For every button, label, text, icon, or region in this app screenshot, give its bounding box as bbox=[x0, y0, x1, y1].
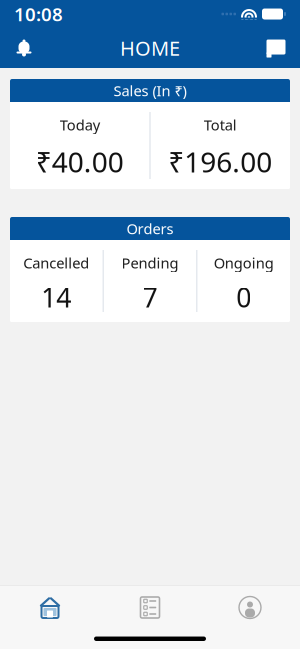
button[interactable]: Orders bbox=[100, 585, 200, 629]
staticText: Today bbox=[60, 115, 100, 134]
button[interactable]: Notifications bbox=[2, 28, 46, 68]
staticText: ₹40.00 bbox=[36, 143, 124, 180]
staticText: HOME bbox=[120, 35, 180, 61]
button[interactable]: Messages bbox=[254, 28, 298, 68]
staticText: Cancelled bbox=[23, 253, 89, 272]
staticText: Total bbox=[204, 115, 237, 134]
staticText: Orders bbox=[126, 219, 173, 238]
staticText: 14 bbox=[41, 279, 71, 315]
staticText: Sales (In ₹) bbox=[113, 81, 186, 100]
staticText: 10:08 bbox=[14, 2, 63, 26]
staticText: Ongoing bbox=[214, 253, 274, 272]
staticText: Pending bbox=[121, 253, 178, 272]
staticText: 7 bbox=[142, 279, 157, 315]
staticText: ₹196.00 bbox=[168, 143, 272, 180]
staticText: 0 bbox=[236, 279, 251, 315]
button[interactable]: Home bbox=[0, 585, 100, 629]
button[interactable]: Profile bbox=[200, 585, 300, 629]
